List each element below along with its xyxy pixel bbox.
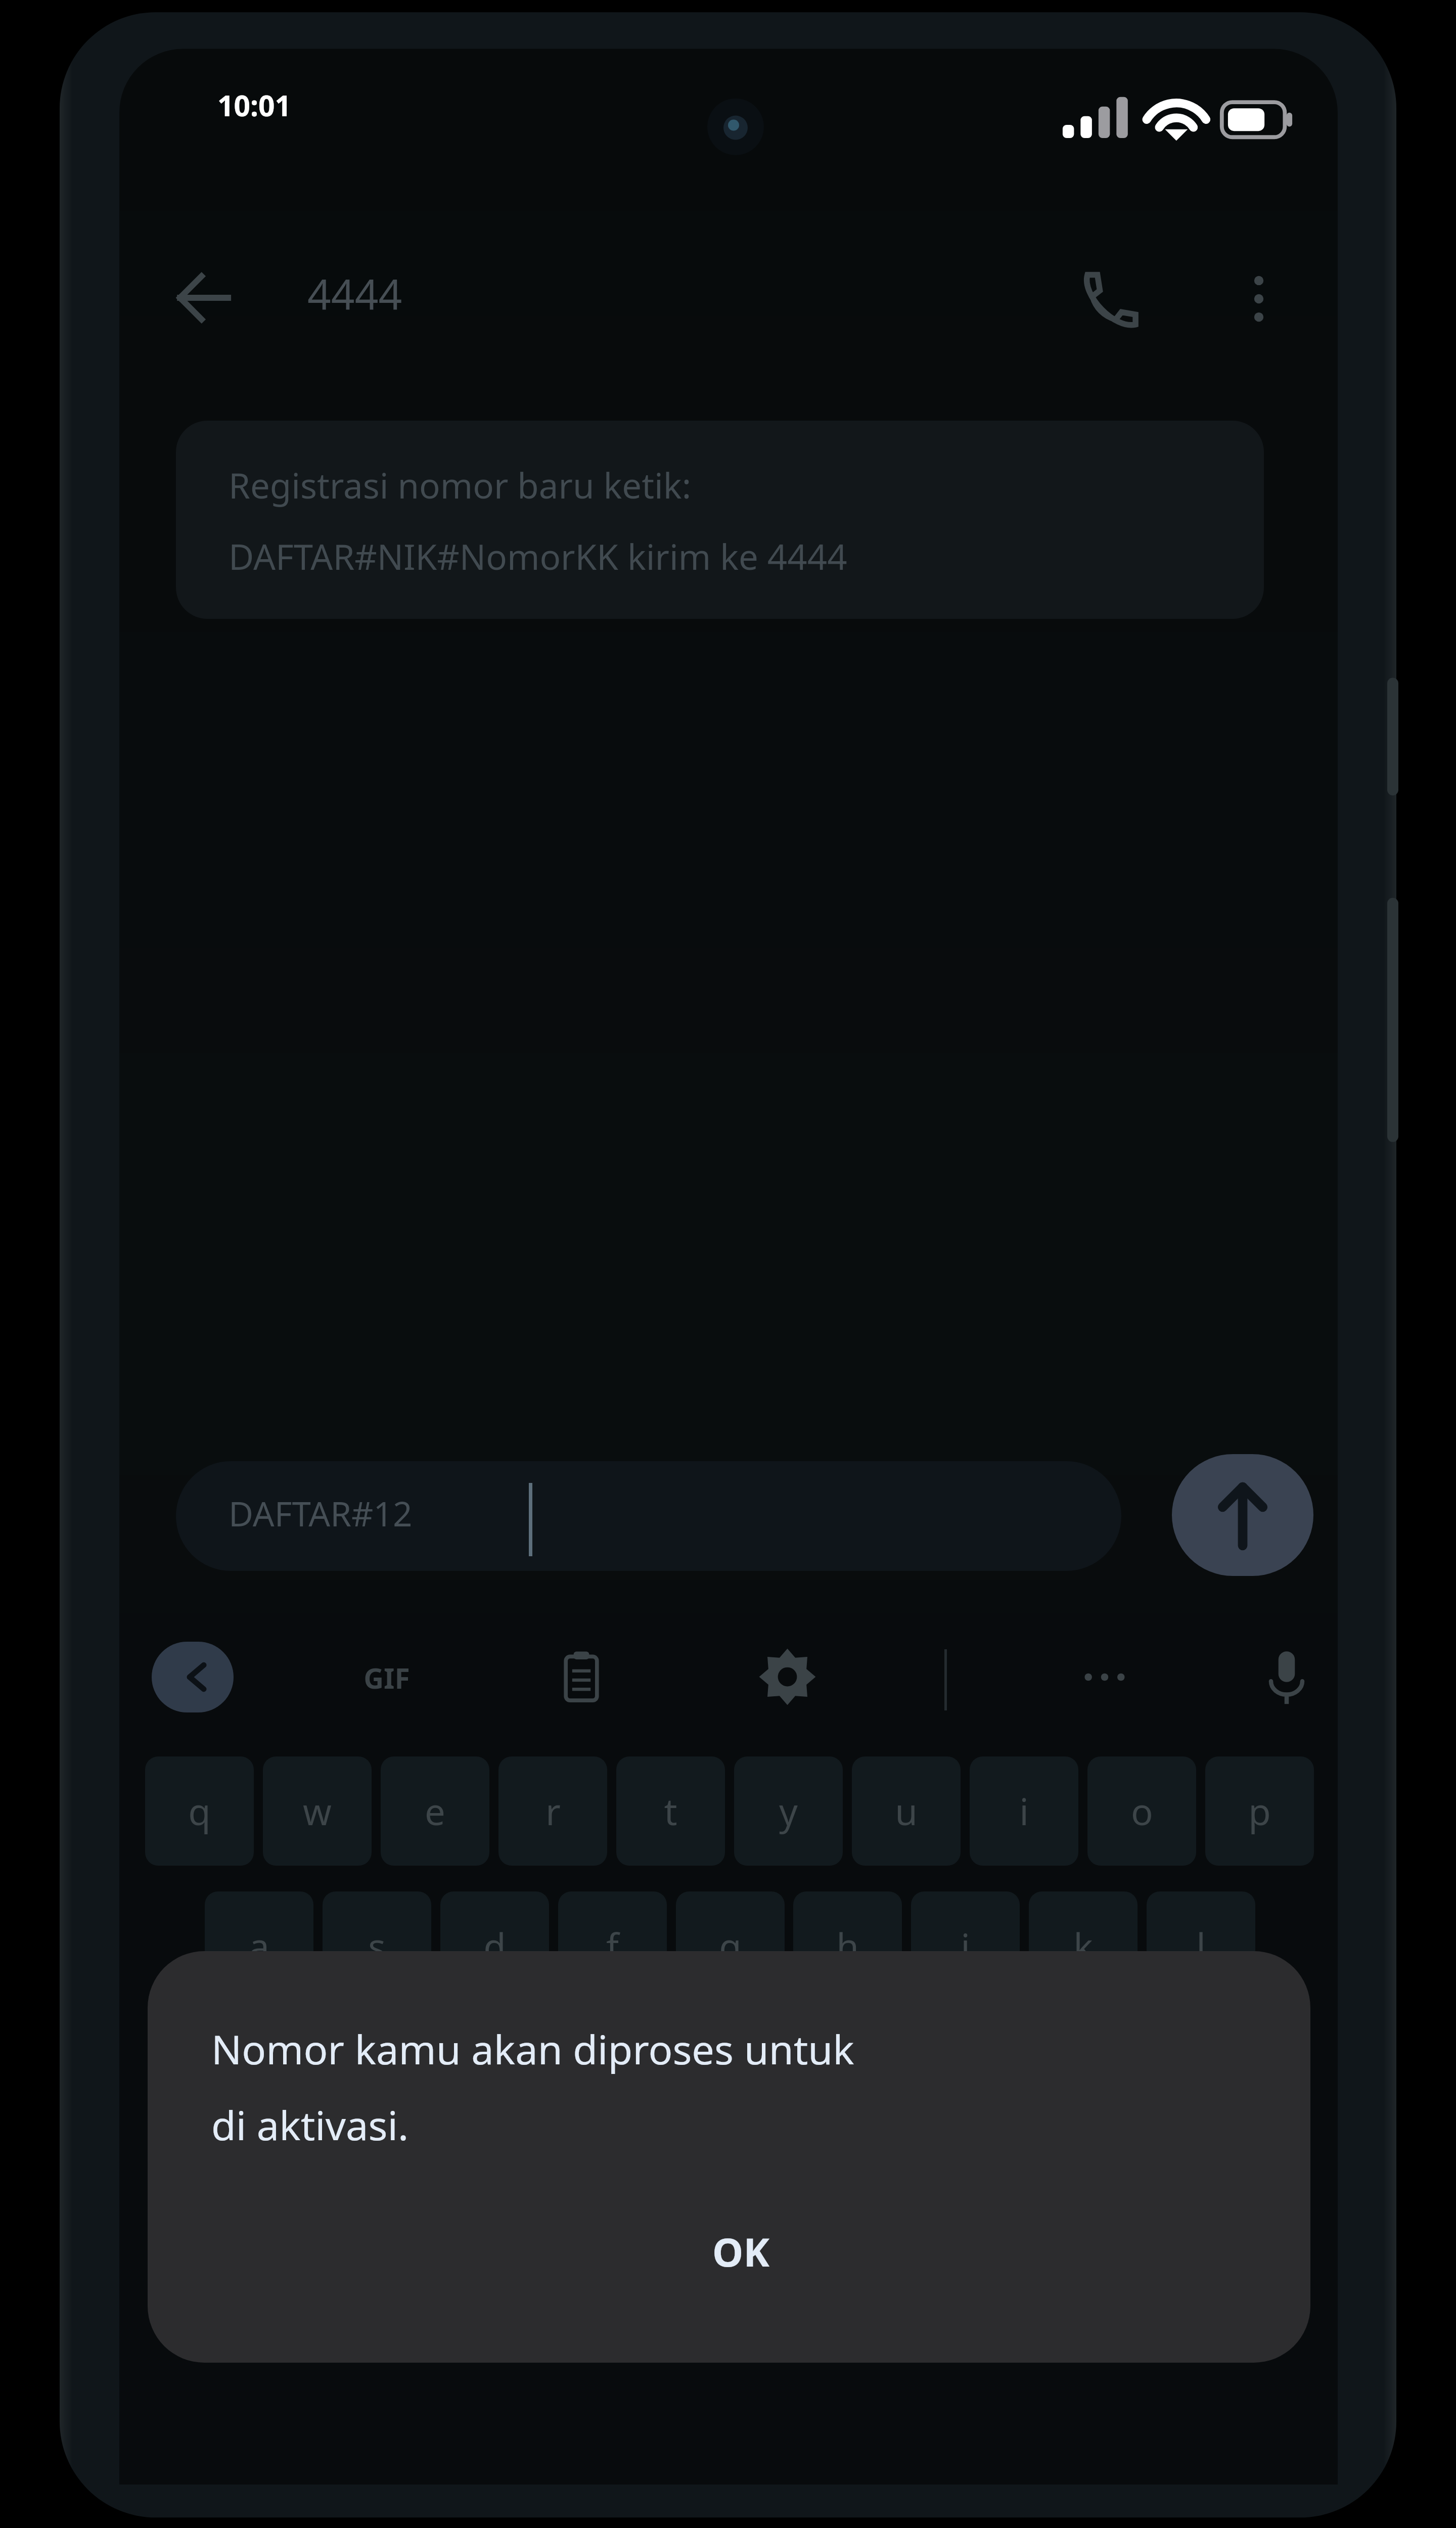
button[interactable]: Settings (743, 1639, 832, 1715)
button[interactable]: u (852, 1756, 961, 1866)
staticText: d (483, 1921, 506, 1971)
staticText: l (1196, 1921, 1206, 1971)
staticText: Registrasi nomor baru ketik: (229, 461, 692, 509)
button[interactable]: Send (1172, 1454, 1313, 1576)
button[interactable]: f (558, 1891, 667, 2001)
staticText: w (303, 1786, 332, 1836)
staticText: OK (712, 2225, 769, 2278)
staticText: o (1131, 1786, 1153, 1836)
staticText: i (1019, 1786, 1029, 1836)
button[interactable]: q (145, 1756, 254, 1866)
staticText: di aktivasi. (211, 2097, 409, 2152)
button[interactable]: o (1087, 1756, 1196, 1866)
staticText: DAFTAR#NIK#NomorKK kirim ke 4444 (229, 532, 847, 580)
button[interactable]: j (911, 1891, 1020, 2001)
button[interactable]: Back (162, 256, 258, 339)
staticText: u (895, 1786, 918, 1836)
button[interactable] (176, 1461, 1121, 1571)
staticText: f (606, 1921, 619, 1971)
staticText: GIF (363, 1659, 410, 1697)
button[interactable]: a (205, 1891, 313, 2001)
button[interactable]: s (323, 1891, 431, 2001)
button[interactable]: k (1029, 1891, 1137, 2001)
button[interactable]: GIF (339, 1652, 435, 1704)
button[interactable]: l (1147, 1891, 1255, 2001)
button[interactable]: Hide toolbar (152, 1642, 234, 1712)
button[interactable]: i (970, 1756, 1078, 1866)
staticText: 4444 (307, 265, 402, 322)
staticText: p (1248, 1786, 1271, 1836)
button[interactable]: Call (1067, 257, 1163, 340)
button[interactable]: OK (642, 2205, 839, 2297)
button[interactable]: g (676, 1891, 785, 2001)
staticText: Nomor kamu akan diproses untuk (211, 2021, 854, 2076)
button[interactable]: t (616, 1756, 725, 1866)
staticText: q (188, 1786, 211, 1836)
staticText: s (368, 1921, 386, 1971)
staticText: 10:01 (217, 85, 292, 124)
staticText: k (1073, 1921, 1093, 1971)
staticText: h (836, 1921, 859, 1971)
button[interactable]: r (498, 1756, 607, 1866)
staticText: DAFTAR#12 (229, 1490, 413, 1537)
staticText: r (545, 1786, 561, 1836)
button[interactable]: y (734, 1756, 843, 1866)
staticText: a (249, 1921, 269, 1971)
button[interactable]: Voice input (1244, 1638, 1330, 1717)
button[interactable]: More options (1211, 257, 1307, 340)
button[interactable]: h (793, 1891, 902, 2001)
button[interactable]: d (440, 1891, 549, 2001)
button[interactable]: w (263, 1756, 372, 1866)
button[interactable]: e (381, 1756, 489, 1866)
button[interactable] (176, 421, 1264, 619)
button[interactable]: p (1205, 1756, 1314, 1866)
staticText: t (664, 1786, 677, 1836)
staticText: e (425, 1786, 445, 1836)
button[interactable]: Clipboard (546, 1642, 628, 1712)
staticText: j (961, 1921, 970, 1971)
button[interactable]: More keyboard options (1057, 1642, 1153, 1712)
staticText: y (779, 1786, 798, 1836)
staticText: g (719, 1921, 742, 1971)
